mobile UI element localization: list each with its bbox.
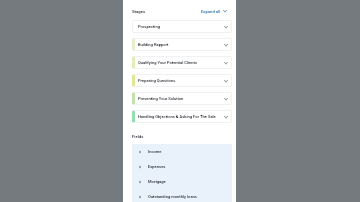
button[interactable]: Preparing Questions: [132, 74, 232, 87]
button[interactable]: Expenses: [132, 159, 232, 174]
staticText: Building Rapport: [138, 42, 169, 47]
button[interactable]: Building Rapport: [132, 38, 232, 51]
staticText: Handling Objections & Asking For The Sal…: [138, 114, 216, 119]
other: Expand Presenting Your Solution: [223, 96, 229, 102]
staticText: Fields: [132, 134, 144, 139]
button[interactable]: Presenting Your Solution: [132, 92, 232, 105]
staticText: Preparing Questions: [138, 78, 176, 83]
button[interactable]: Outstanding monthly loans: [132, 189, 232, 202]
button[interactable]: Handling Objections & Asking For The Sal…: [132, 110, 232, 123]
staticText: Prospecting: [138, 24, 160, 29]
other: Expand Prospecting: [223, 24, 229, 30]
other: Expand Qualifying Your Potential Clients: [223, 60, 229, 66]
other: Expand Handling Objections & Asking For …: [223, 114, 229, 120]
staticText: Stages: [132, 9, 146, 14]
button[interactable]: Mortgage: [132, 174, 232, 189]
staticText: Expenses: [148, 164, 166, 169]
button[interactable]: Prospecting: [132, 20, 232, 33]
other: Expand Preparing Questions: [223, 78, 229, 84]
button[interactable]: Income: [132, 144, 232, 159]
button[interactable]: Expand all: [201, 8, 228, 14]
other: Expand Building Rapport: [223, 42, 229, 48]
staticText: Presenting Your Solution: [138, 96, 184, 101]
staticText: Outstanding monthly loans: [148, 194, 197, 199]
staticText: Mortgage: [148, 179, 166, 184]
staticText: Qualifying Your Potential Clients: [138, 60, 197, 65]
staticText: Income: [148, 149, 162, 154]
staticText: Expand all: [201, 9, 221, 14]
button[interactable]: Qualifying Your Potential Clients: [132, 56, 232, 69]
